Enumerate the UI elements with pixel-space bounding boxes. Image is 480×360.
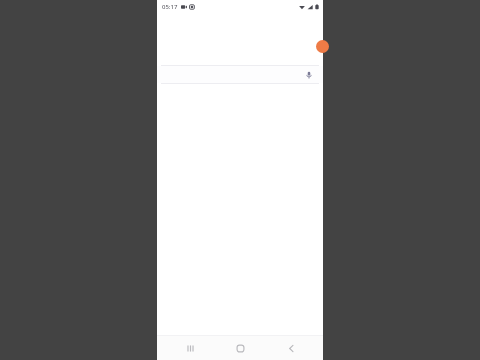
button[interactable]: Voice search bbox=[157, 66, 323, 83]
button[interactable]: Notification badge bbox=[316, 40, 329, 53]
button[interactable]: Back bbox=[273, 336, 309, 360]
button[interactable]: Recent apps bbox=[172, 336, 208, 360]
staticText: 05:17 bbox=[162, 3, 178, 11]
button[interactable]: Voice search bbox=[304, 70, 314, 80]
button[interactable]: Home bbox=[222, 336, 258, 360]
